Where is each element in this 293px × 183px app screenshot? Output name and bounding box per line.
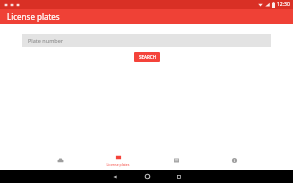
button[interactable]: Documents bbox=[158, 150, 194, 170]
button[interactable]: License plates bbox=[100, 150, 136, 170]
button[interactable]: Info bbox=[216, 150, 252, 170]
staticText: License plates bbox=[7, 11, 60, 22]
staticText: License plates bbox=[106, 162, 130, 167]
button[interactable]: Plate number bbox=[22, 34, 271, 47]
staticText: SEARCH bbox=[139, 54, 156, 60]
button[interactable]: SEARCH bbox=[134, 52, 160, 62]
button[interactable]: Vehicles bbox=[42, 150, 78, 170]
button[interactable]: Back bbox=[105, 170, 125, 183]
staticText: 12:30 bbox=[277, 1, 290, 8]
staticText: Plate number bbox=[28, 37, 64, 44]
button[interactable]: Home bbox=[137, 170, 157, 183]
button[interactable]: Recents bbox=[169, 170, 189, 183]
